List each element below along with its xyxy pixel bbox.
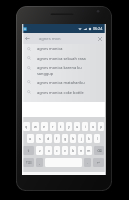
- button[interactable]: o: [90, 122, 96, 131]
- button[interactable]: q: [23, 122, 30, 131]
- button[interactable]: v: [62, 146, 68, 155]
- staticText: y: [68, 124, 70, 129]
- staticText: e: [43, 124, 46, 129]
- button[interactable]: a: [27, 134, 34, 143]
- button[interactable]: ⇧: [23, 146, 34, 155]
- button[interactable]: r: [50, 122, 56, 131]
- staticText: agnes monica coke bottle: [37, 90, 84, 95]
- button[interactable]: i: [82, 122, 88, 131]
- button[interactable]: t: [58, 122, 64, 131]
- staticText: h: [72, 136, 75, 141]
- staticText: c: [56, 148, 58, 153]
- button[interactable]: k: [86, 134, 92, 143]
- button[interactable]: x: [45, 146, 52, 155]
- button[interactable]: y: [66, 122, 72, 131]
- button[interactable]: agnes monica matahariku: [22, 77, 105, 87]
- button[interactable]: agnes monica sebuah rasa: [22, 53, 105, 63]
- staticText: t: [60, 124, 62, 129]
- staticText: sanggup: [37, 71, 54, 76]
- staticText: a: [29, 136, 32, 141]
- button[interactable]: p: [98, 122, 104, 131]
- button[interactable]: z: [36, 146, 43, 155]
- staticText: agnes monica sebuah rasa: [37, 56, 86, 61]
- button[interactable]: g: [62, 134, 68, 143]
- button[interactable]: f: [54, 134, 60, 143]
- staticText: ,: [39, 160, 40, 165]
- button[interactable]: w: [32, 122, 39, 131]
- staticText: agnes mon: [39, 36, 61, 42]
- staticText: agnes monica matahariku: [37, 80, 85, 85]
- button[interactable]: d: [45, 134, 52, 143]
- button[interactable]: agnes monica: [22, 44, 105, 53]
- staticText: p: [100, 124, 103, 129]
- button[interactable]: Back: [22, 33, 105, 44]
- button[interactable]: ⌫: [94, 146, 104, 155]
- staticText: 06:24: [93, 26, 103, 31]
- staticText: ↵: [97, 161, 100, 165]
- button[interactable]: n: [78, 146, 84, 155]
- button[interactable]: agnes monica karena ku: [22, 63, 105, 77]
- button[interactable]: e: [41, 122, 48, 131]
- staticText: i: [85, 124, 86, 129]
- staticText: o: [92, 124, 95, 129]
- staticText: x: [48, 148, 50, 153]
- button[interactable]: ?123: [23, 158, 34, 167]
- button[interactable]: Clear: [96, 35, 103, 42]
- staticText: q: [25, 124, 28, 129]
- button[interactable]: j: [78, 134, 84, 143]
- staticText: n: [80, 148, 83, 153]
- staticText: agnes monica: [37, 46, 63, 51]
- button[interactable]: l: [94, 134, 100, 143]
- button[interactable]: u: [74, 122, 80, 131]
- staticText: .: [87, 160, 88, 165]
- button[interactable]: b: [70, 146, 76, 155]
- staticText: l: [97, 136, 98, 141]
- button[interactable]: ↵: [93, 158, 104, 167]
- button[interactable]: agnes monica coke bottle: [22, 87, 105, 97]
- staticText: agnes monica karena ku: [37, 65, 82, 70]
- staticText: m: [87, 148, 91, 153]
- staticText: u: [76, 124, 79, 129]
- button[interactable]: ,: [36, 158, 43, 167]
- staticText: ⌫: [97, 149, 102, 153]
- staticText: z: [39, 148, 41, 153]
- staticText: s: [39, 136, 41, 141]
- staticText: g: [64, 136, 67, 141]
- button[interactable]: m: [86, 146, 92, 155]
- staticText: d: [47, 136, 50, 141]
- staticText: b: [72, 148, 75, 153]
- staticText: ⇧: [27, 149, 30, 153]
- button[interactable]: Back: [24, 35, 31, 42]
- button[interactable]: h: [70, 134, 76, 143]
- staticText: v: [64, 148, 66, 153]
- staticText: f: [56, 136, 58, 141]
- staticText: k: [88, 136, 90, 141]
- staticText: r: [52, 124, 54, 129]
- staticText: ?123: [26, 161, 32, 165]
- button[interactable]: s: [36, 134, 43, 143]
- staticText: w: [34, 124, 37, 129]
- staticText: j: [81, 136, 82, 141]
- button[interactable]: c: [54, 146, 60, 155]
